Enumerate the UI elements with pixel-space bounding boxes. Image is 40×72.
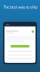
staticText: The best way to ship	[3, 4, 37, 9]
staticText: Menu	[6, 24, 10, 26]
